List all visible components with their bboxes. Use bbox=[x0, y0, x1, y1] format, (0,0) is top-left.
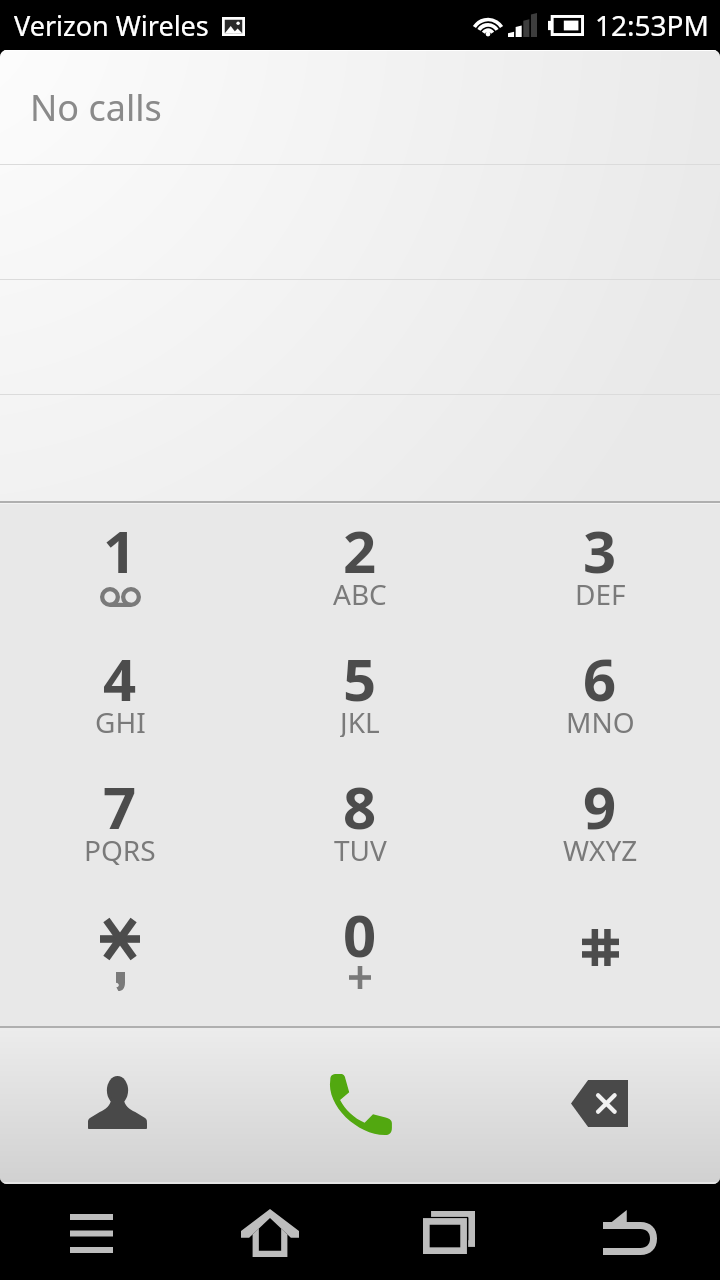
button[interactable]: 5 bbox=[240, 633, 480, 761]
button[interactable]: 0 bbox=[240, 889, 480, 1017]
button[interactable]: 7 bbox=[0, 761, 240, 889]
button[interactable]: 6 bbox=[480, 633, 720, 761]
staticText: 12:53PM bbox=[595, 6, 709, 44]
staticText: DEF bbox=[575, 575, 626, 609]
button[interactable] bbox=[0, 889, 240, 1017]
staticText: 9 bbox=[583, 767, 617, 837]
button[interactable]: Back bbox=[540, 1184, 720, 1280]
staticText: No calls bbox=[30, 83, 162, 132]
staticText: GHI bbox=[95, 703, 146, 737]
staticText: TUV bbox=[334, 831, 387, 865]
staticText: 4 bbox=[103, 639, 137, 709]
staticText: PQRS bbox=[84, 831, 156, 865]
staticText: 2 bbox=[343, 511, 377, 581]
staticText: ABC bbox=[333, 575, 387, 609]
button[interactable]: 8 bbox=[240, 761, 480, 889]
staticText: 0 bbox=[343, 895, 377, 965]
button[interactable]: No calls bbox=[0, 51, 720, 164]
button[interactable]: Call bbox=[240, 1028, 480, 1182]
button[interactable]: 9 bbox=[480, 761, 720, 889]
button[interactable]: Home bbox=[180, 1184, 360, 1280]
button[interactable] bbox=[480, 889, 720, 1017]
staticText: Verizon Wireles bbox=[14, 7, 209, 44]
button[interactable] bbox=[0, 395, 720, 501]
button[interactable]: 4 bbox=[0, 633, 240, 761]
button[interactable]: 2 bbox=[240, 504, 480, 633]
staticText: WXYZ bbox=[563, 831, 638, 865]
staticText: 5 bbox=[343, 639, 377, 709]
staticText: 8 bbox=[343, 767, 377, 837]
button[interactable]: Contacts bbox=[0, 1028, 240, 1182]
staticText: 3 bbox=[583, 511, 617, 581]
staticText: 7 bbox=[103, 767, 137, 837]
button[interactable] bbox=[0, 165, 720, 279]
button[interactable]: 1 bbox=[0, 504, 240, 633]
staticText: MNO bbox=[566, 703, 635, 737]
staticText: JKL bbox=[340, 703, 380, 737]
button[interactable]: 3 bbox=[480, 504, 720, 633]
staticText: 1 bbox=[103, 511, 137, 581]
staticText: 6 bbox=[583, 639, 617, 709]
button[interactable]: Delete bbox=[480, 1028, 720, 1182]
button[interactable]: Menu bbox=[0, 1184, 180, 1280]
button[interactable] bbox=[0, 280, 720, 394]
button[interactable]: Recents bbox=[360, 1184, 540, 1280]
